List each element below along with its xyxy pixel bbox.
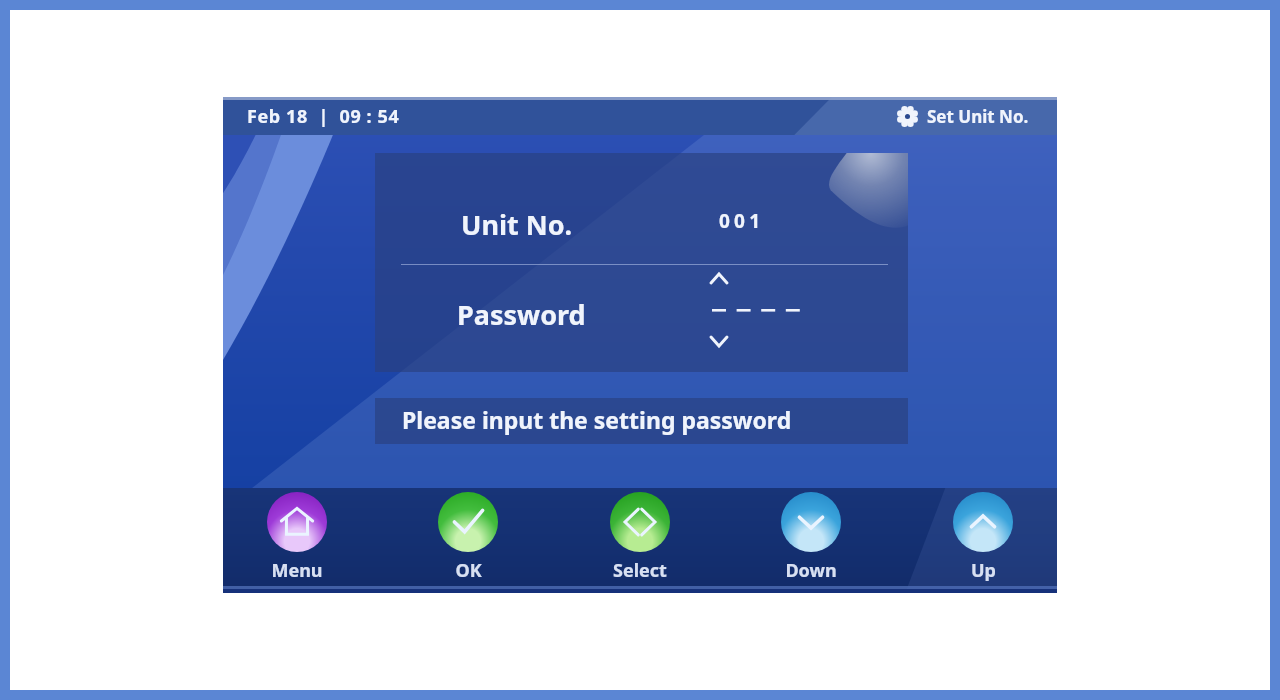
button[interactable]: OK [420, 488, 516, 593]
button[interactable]: Menu [249, 488, 345, 593]
other: Settings [897, 106, 918, 127]
staticText: Please input the setting password [402, 404, 792, 435]
staticText: Unit No. [461, 206, 573, 243]
staticText: Select [613, 558, 667, 583]
staticText: Up [971, 558, 996, 583]
staticText: Down [785, 558, 837, 583]
staticText: Password [457, 296, 586, 333]
staticText: Set Unit No. [927, 105, 1029, 128]
staticText: OK [455, 558, 482, 583]
button[interactable]: Down [763, 488, 859, 593]
staticText: Feb 18 | 09 : 54 [247, 104, 400, 129]
staticText: Menu [271, 558, 323, 583]
button[interactable]: Select [592, 488, 688, 593]
button[interactable]: Up [935, 488, 1031, 593]
staticText: 001 [719, 208, 765, 234]
button[interactable]: Settings [895, 100, 1031, 133]
